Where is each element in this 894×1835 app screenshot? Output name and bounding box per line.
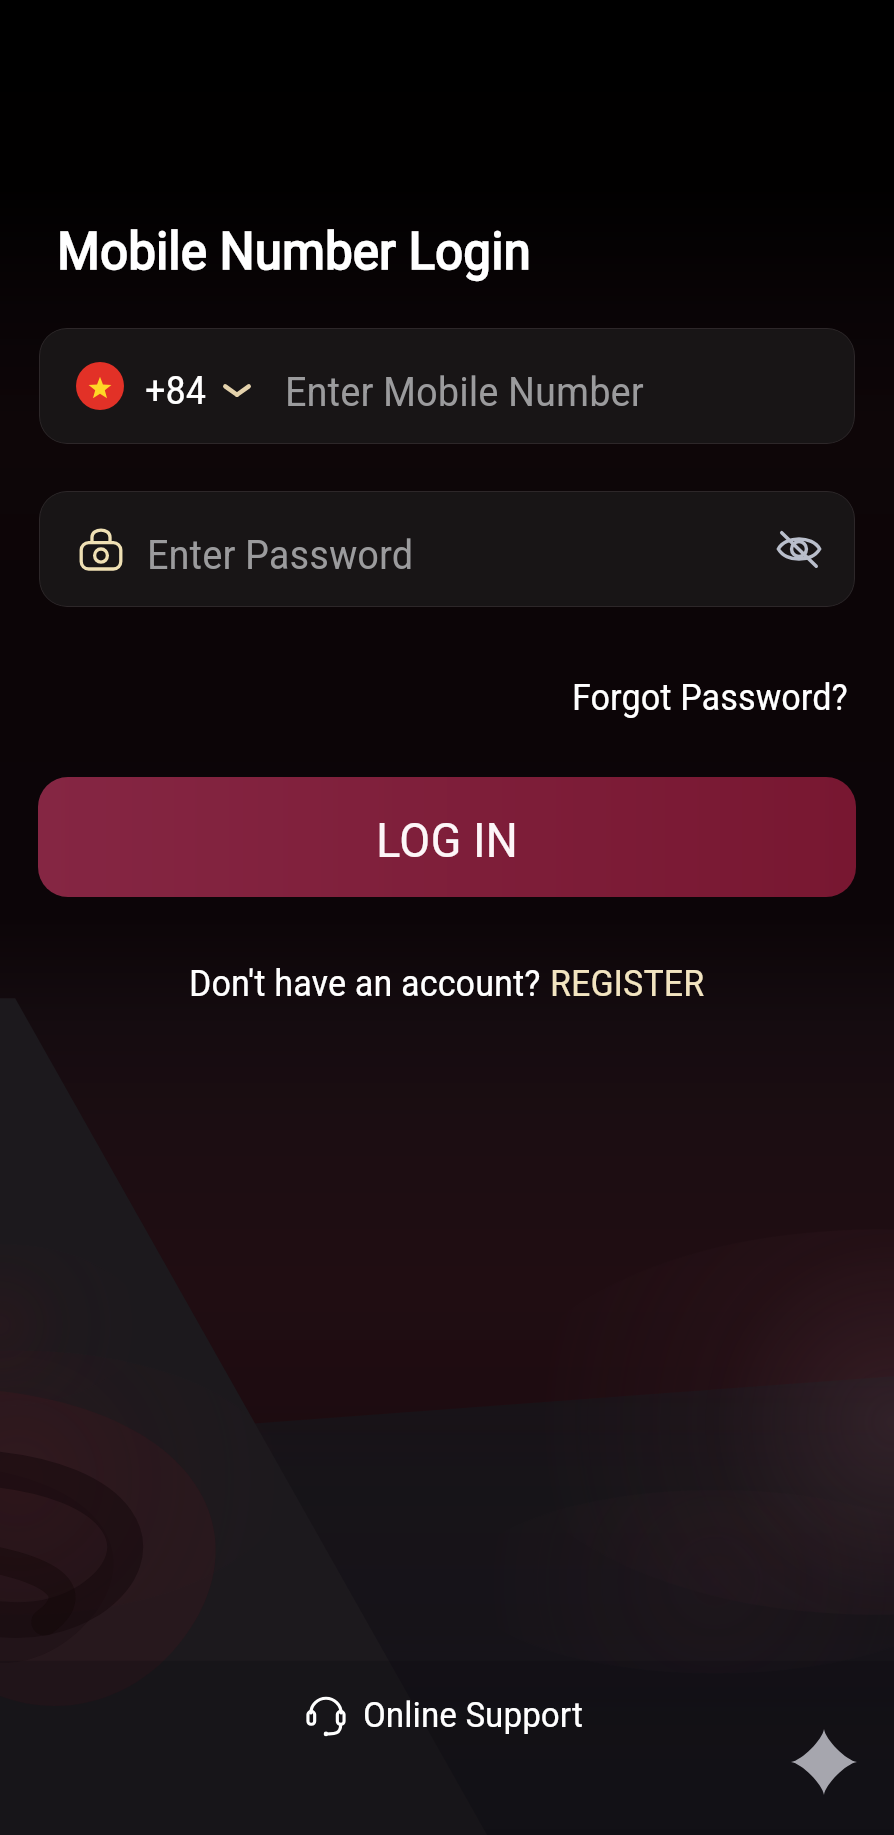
staticText: Forgot Password? xyxy=(572,677,848,719)
staticText: Online Support xyxy=(363,1695,584,1736)
button[interactable]: REGISTER xyxy=(550,963,705,1005)
button[interactable]: Show password xyxy=(743,491,855,607)
button[interactable]: Forgot Password? xyxy=(556,659,864,737)
staticText: LOG IN xyxy=(376,812,519,868)
staticText: Enter Mobile Number xyxy=(285,369,644,416)
button[interactable]: AI assistant xyxy=(791,1729,857,1795)
button[interactable]: Enter Password xyxy=(123,491,743,607)
staticText: Mobile Number Login xyxy=(57,221,531,282)
staticText: +84 xyxy=(145,369,207,414)
staticText: Enter Password xyxy=(147,532,414,579)
staticText: REGISTER xyxy=(550,963,705,1005)
button[interactable]: Online Support xyxy=(305,1694,584,1736)
button[interactable]: +84 xyxy=(39,328,273,444)
button[interactable]: LOG IN xyxy=(38,777,856,897)
staticText: Don't have an account? xyxy=(189,963,550,1005)
button[interactable]: Enter Mobile Number xyxy=(273,328,855,444)
